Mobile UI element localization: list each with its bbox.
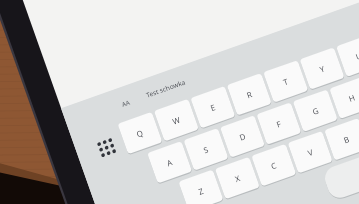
button[interactable]: Phone on desk showing email compose with…: [0, 0, 359, 204]
